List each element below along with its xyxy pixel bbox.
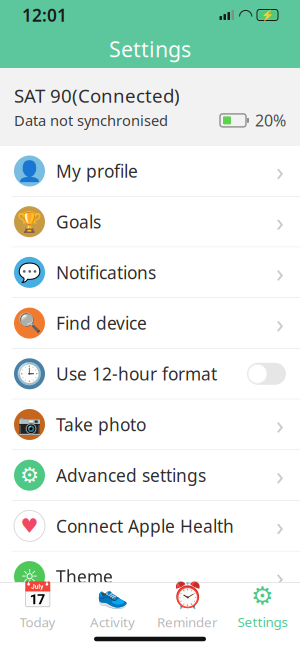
staticText: About — [56, 616, 105, 639]
button[interactable]: 🕒 — [0, 349, 300, 399]
button[interactable]: 👟 — [75, 583, 150, 629]
staticText: 📷 — [18, 414, 41, 435]
button[interactable]: 🏆 — [0, 197, 300, 247]
staticText: Goals — [56, 210, 101, 233]
staticText: › — [276, 560, 284, 593]
staticText: Activity — [90, 613, 135, 631]
staticText: › — [276, 256, 284, 289]
button[interactable]: ⏰ — [150, 583, 225, 629]
button[interactable]: 📅 — [0, 583, 75, 629]
staticText: 💬 — [18, 262, 41, 283]
staticText: 👤 — [17, 160, 42, 182]
staticText: Reminder — [157, 613, 218, 631]
button[interactable]: ⚙ — [225, 583, 300, 629]
staticText: Today — [19, 613, 55, 631]
staticText: › — [276, 154, 284, 188]
staticText: 🏆 — [17, 210, 42, 233]
staticText: › — [276, 306, 284, 340]
staticText: 12:01 — [22, 3, 67, 26]
button[interactable]: 📷 — [0, 399, 300, 450]
button[interactable]: 🔍 — [0, 298, 300, 349]
staticText: Data not synchronised — [14, 111, 168, 130]
staticText: Advanced settings — [56, 464, 206, 487]
staticText: SAT 90(Connected) — [14, 83, 180, 108]
staticText: ⚙ — [251, 581, 274, 610]
staticText: ⚙ — [20, 463, 39, 487]
staticText: › — [276, 458, 284, 492]
staticText: ♥ — [20, 515, 38, 537]
staticText: ◠ — [239, 5, 252, 25]
staticText: My profile — [56, 159, 138, 182]
staticText: ☼ — [20, 565, 38, 588]
button[interactable]: ♥ — [0, 501, 300, 552]
staticText: Theme — [56, 565, 113, 588]
staticText: Settings — [109, 35, 191, 63]
button[interactable]: ℹ — [0, 602, 300, 649]
button[interactable]: ☼ — [0, 552, 300, 602]
staticText: 🔍 — [18, 312, 41, 334]
staticText: 👟 — [96, 581, 128, 610]
staticText: › — [276, 509, 284, 543]
button[interactable]: ⚙ — [0, 450, 300, 501]
staticText: 📅 — [21, 581, 53, 610]
staticText: Settings — [237, 613, 287, 631]
staticText: ℹ — [27, 614, 32, 641]
staticText: › — [276, 610, 284, 644]
staticText: Find device — [56, 312, 147, 335]
staticText: › — [276, 205, 284, 238]
staticText: Use 12-hour format — [56, 362, 217, 385]
button[interactable]: 💬 — [0, 247, 300, 298]
staticText: ⏰ — [171, 581, 203, 610]
staticText: › — [276, 408, 284, 441]
staticText: 20% — [255, 110, 286, 131]
staticText: Take photo — [56, 413, 146, 436]
button[interactable]: 👤 — [0, 146, 300, 197]
staticText: Notifications — [56, 261, 156, 284]
staticText: 🕒 — [16, 362, 43, 386]
staticText: ⚡ — [261, 9, 274, 21]
staticText: Connect Apple Health — [56, 514, 234, 537]
